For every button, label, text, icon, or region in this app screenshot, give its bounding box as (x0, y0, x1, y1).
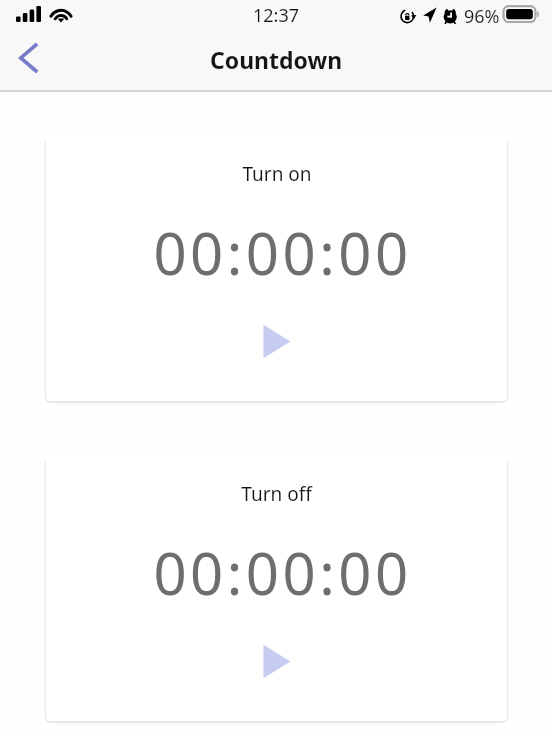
button[interactable]: Turn off (46, 455, 507, 721)
button[interactable]: Start (253, 317, 301, 365)
button[interactable]: Back (2, 31, 56, 85)
staticText: 00:00:00 (153, 213, 412, 292)
button[interactable]: Turn on (46, 135, 507, 401)
staticText: 12:37 (253, 3, 300, 28)
button[interactable]: Start (253, 637, 301, 685)
staticText: 96% (464, 4, 500, 29)
staticText: Turn on (242, 161, 312, 187)
staticText: Turn off (241, 481, 312, 507)
staticText: Countdown (210, 44, 343, 75)
staticText: 00:00:00 (153, 533, 412, 612)
